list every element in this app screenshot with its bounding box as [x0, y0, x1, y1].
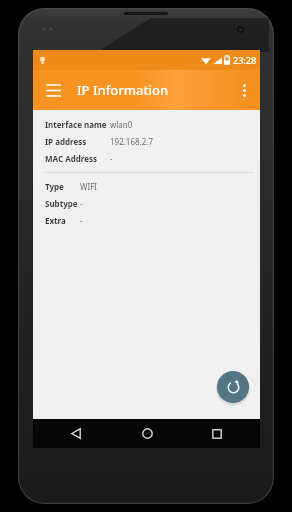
staticText: -	[80, 198, 83, 209]
button[interactable]: Interface name	[33, 116, 260, 133]
staticText: Subtype	[45, 198, 78, 209]
staticText: -	[110, 153, 113, 164]
staticText: Type	[45, 181, 64, 192]
staticText: Extra	[45, 215, 66, 226]
button[interactable]: Open navigation drawer	[38, 75, 68, 105]
button[interactable]: More options	[230, 76, 258, 104]
staticText: IP address	[45, 136, 87, 147]
staticText: MAC Address	[45, 153, 98, 164]
button[interactable]: IP address	[33, 133, 260, 150]
button[interactable]: Refresh	[217, 371, 249, 403]
button[interactable]: Type	[33, 178, 260, 195]
staticText: IP Information	[77, 81, 169, 99]
button[interactable]: MAC Address	[33, 150, 260, 167]
staticText: WIFI	[80, 181, 98, 192]
button[interactable]: Extra	[33, 212, 260, 229]
staticText: wlan0	[110, 119, 133, 130]
button[interactable]: Subtype	[33, 195, 260, 212]
button[interactable]: Back	[48, 419, 104, 448]
button[interactable]: Home	[119, 419, 175, 448]
staticText: Interface name	[45, 119, 107, 130]
button[interactable]: Recent apps	[189, 419, 245, 448]
staticText: -	[80, 215, 83, 226]
staticText: 23:28	[233, 54, 257, 66]
staticText: 192.168.2.7	[110, 136, 154, 147]
